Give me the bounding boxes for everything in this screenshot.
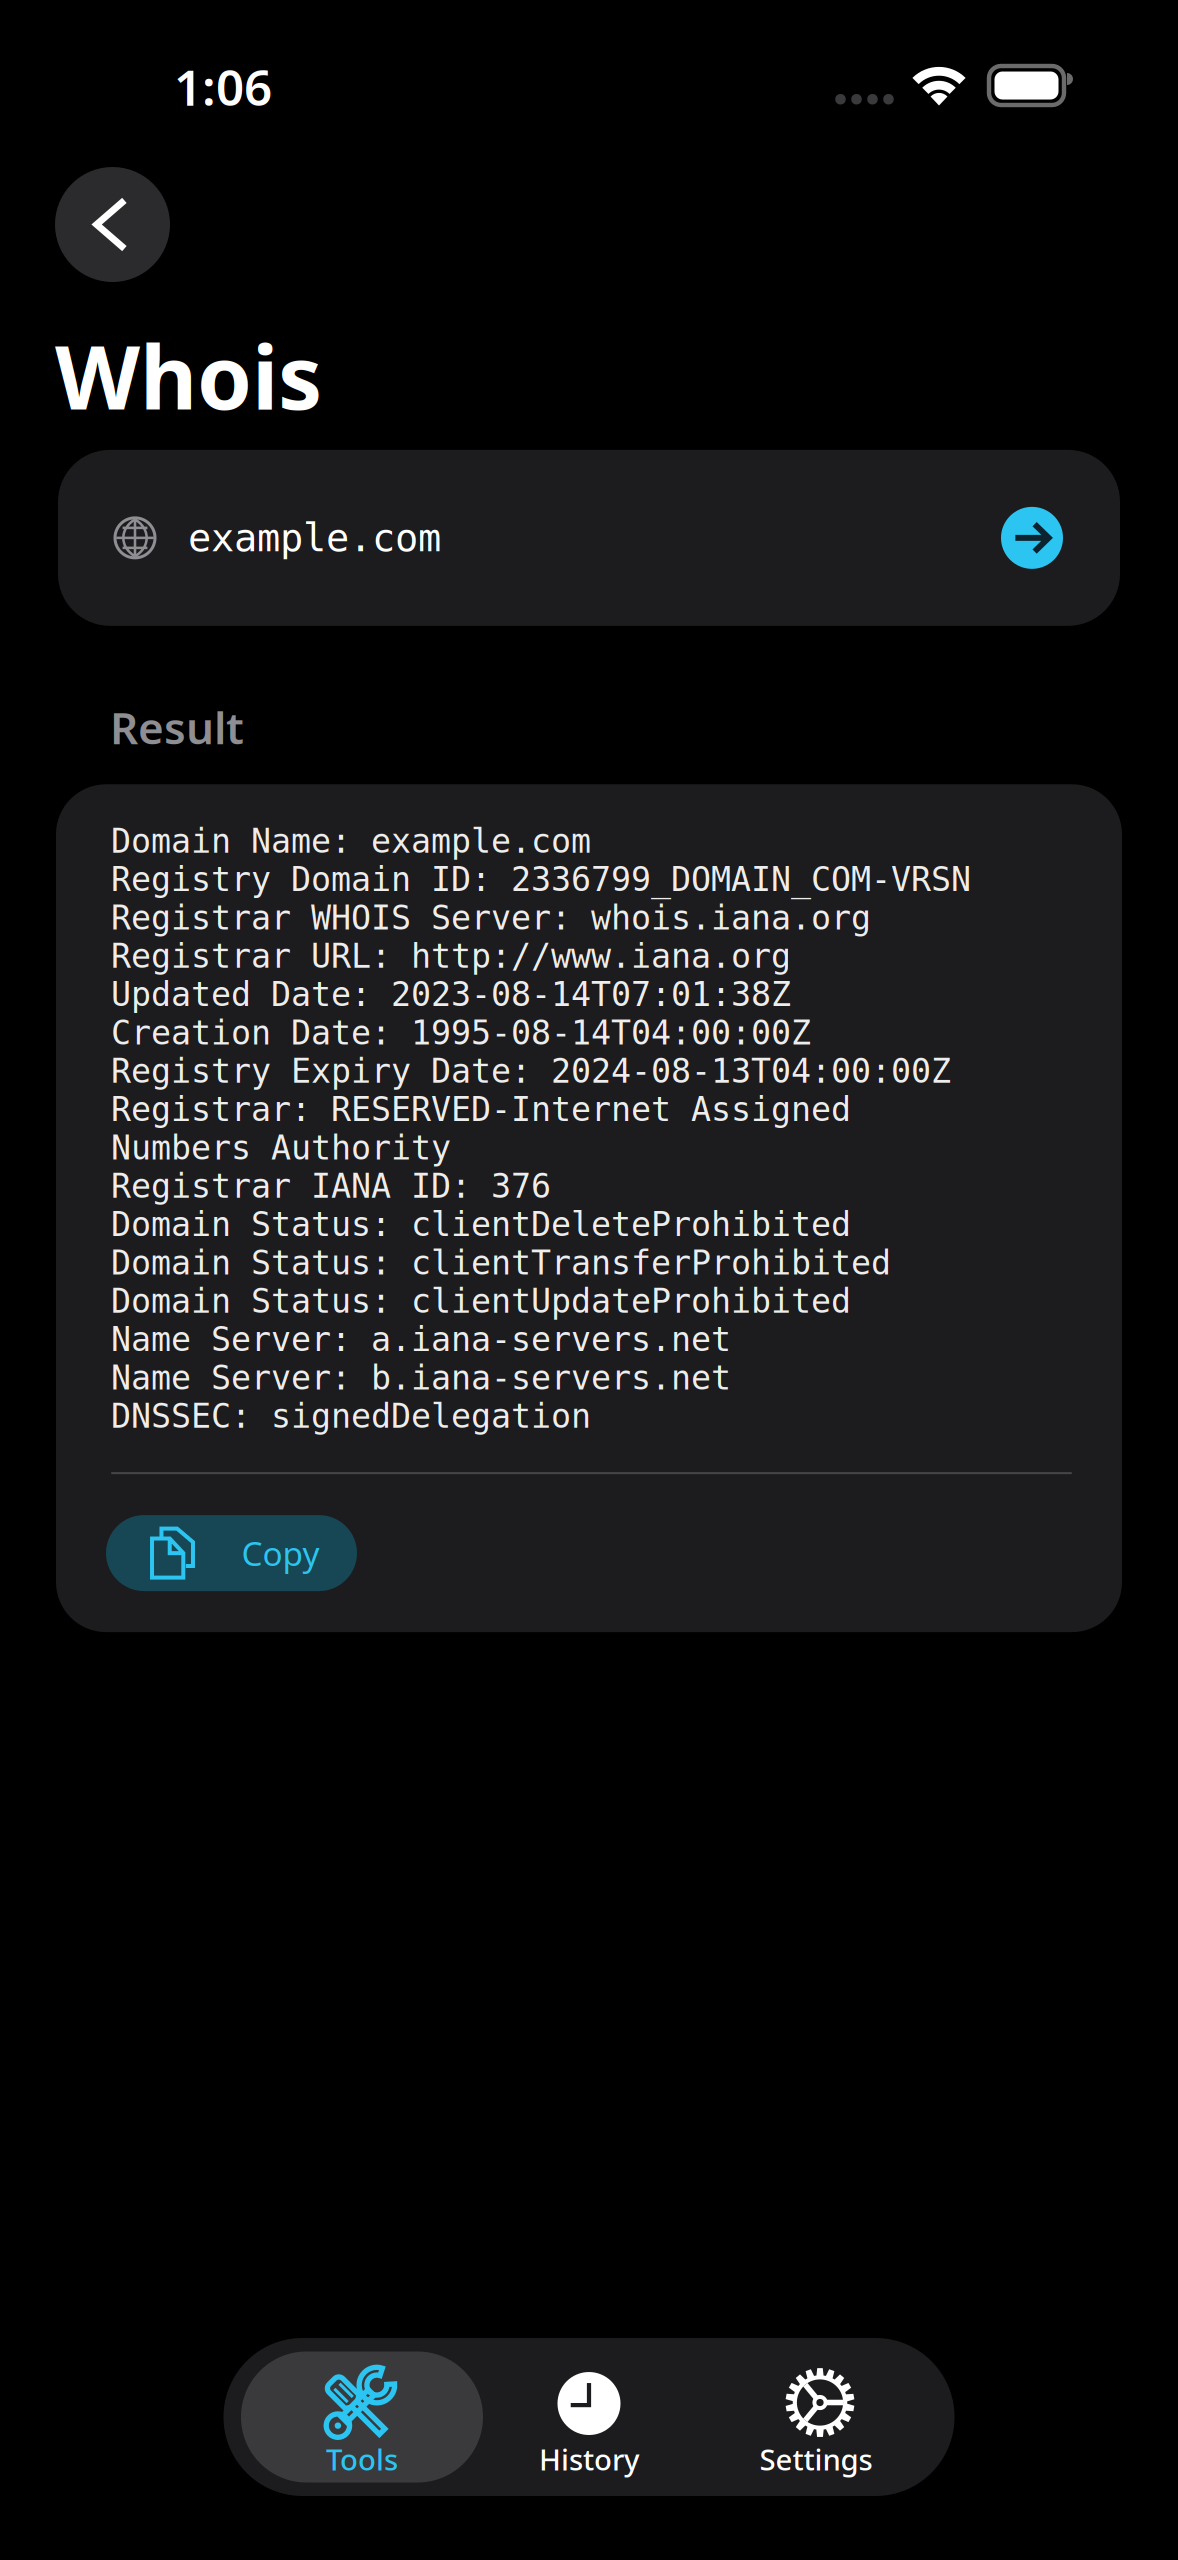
staticText: Result: [110, 698, 244, 756]
staticText: History: [539, 2439, 639, 2478]
button[interactable]: Back: [55, 167, 170, 282]
staticText: Settings: [759, 2439, 872, 2478]
staticText: Whois: [55, 317, 322, 434]
staticText: Domain Name: example.com Registry Domain…: [111, 822, 971, 1435]
button[interactable]: History: [468, 2351, 710, 2482]
button[interactable]: Tools: [241, 2351, 483, 2482]
button[interactable]: Copy: [106, 1515, 357, 1591]
button[interactable]: Settings: [695, 2351, 937, 2482]
staticText: Tools: [326, 2439, 398, 2478]
staticText: Copy: [241, 1531, 319, 1575]
staticText: 1:06: [174, 54, 272, 119]
button[interactable]: Search: [1001, 507, 1063, 569]
staticText: example.com: [188, 516, 441, 560]
